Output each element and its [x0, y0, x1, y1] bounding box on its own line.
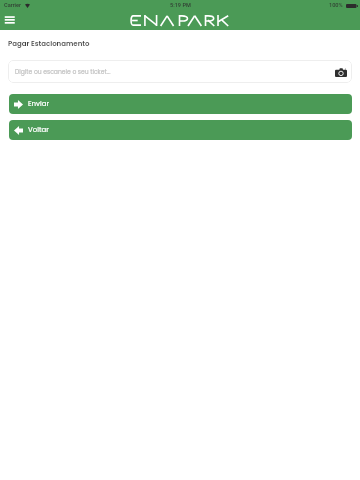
button[interactable]: Open navigation menu	[0, 13, 20, 27]
button[interactable]: EnaPark	[131, 15, 229, 26]
staticText: Voltar	[28, 125, 49, 135]
button[interactable]: Scan ticket with camera	[333, 64, 349, 80]
staticText: Digite ou escaneie o seu ticket...	[15, 68, 111, 76]
staticText: 5:19 PM	[170, 2, 191, 9]
button[interactable]: Enviar	[9, 94, 352, 114]
button[interactable]: Digite ou escaneie o seu ticket...	[8, 60, 352, 83]
staticText: Carrier	[4, 2, 22, 9]
staticText: Enviar	[28, 99, 50, 109]
staticText: 100%	[329, 2, 343, 9]
staticText: Pagar Estacionamento	[8, 39, 90, 49]
button[interactable]: Voltar	[9, 120, 352, 140]
